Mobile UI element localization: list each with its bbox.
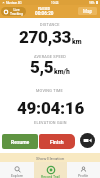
button[interactable]: Live Tracking (1, 7, 26, 16)
staticText: 49:04:16 (17, 98, 84, 118)
staticText: Profile (78, 174, 89, 178)
staticText: Mustaar 4G (6, 1, 22, 5)
button[interactable]: Explore (0, 162, 34, 178)
staticText: ELEVATION GAIN (34, 120, 67, 124)
staticText: MOVING TIME (36, 88, 64, 92)
staticText: AVERAGE SPEED (34, 54, 67, 58)
staticText: Live Tracking (10, 8, 23, 16)
staticText: 5,5 (30, 57, 54, 77)
staticText: PAUSED (38, 7, 51, 11)
staticText: km (72, 38, 82, 46)
staticText: 00:06:20 (35, 11, 54, 16)
button[interactable]: Record Trail (34, 162, 67, 178)
button[interactable]: Profile (67, 162, 100, 178)
staticText: Resume (11, 139, 30, 145)
staticText: Show Elevation (36, 156, 65, 161)
staticText: Explore (11, 174, 23, 178)
button[interactable]: Resume (2, 134, 38, 149)
staticText: Record Trail (41, 175, 60, 178)
button[interactable]: Show Elevation (0, 153, 100, 163)
staticText: 270,33 (19, 27, 72, 47)
button[interactable]: Record video (80, 133, 95, 148)
staticText: 98% (89, 1, 95, 5)
staticText: 10:44 (51, 1, 59, 5)
staticText: Finish (50, 139, 64, 145)
staticText: Map (83, 9, 93, 14)
staticText: km/h (54, 68, 70, 76)
button[interactable]: Finish (39, 134, 75, 149)
button[interactable]: Map (78, 7, 97, 15)
staticText: DISTANCE (40, 22, 60, 26)
